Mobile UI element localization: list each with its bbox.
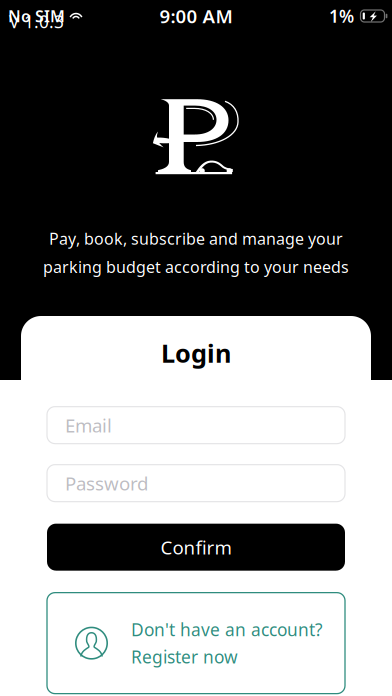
staticText: 1% xyxy=(329,4,354,27)
button[interactable]: Email xyxy=(47,407,345,444)
staticText: Email xyxy=(65,413,112,437)
staticText: Pay, book, subscribe and manage your xyxy=(49,228,343,249)
button[interactable]: Confirm xyxy=(47,524,345,571)
staticText: Password xyxy=(65,471,148,495)
staticText: 9:00 AM xyxy=(159,4,232,28)
staticText: No SIM xyxy=(8,5,65,27)
button[interactable]: Password xyxy=(47,465,345,502)
staticText: Login xyxy=(161,336,231,370)
button[interactable]: Don't have an account? xyxy=(47,593,345,694)
staticText: Confirm xyxy=(160,535,231,559)
staticText: Register now xyxy=(131,645,238,668)
staticText: parking budget according to your needs xyxy=(43,256,349,277)
staticText: V 1.0.3 xyxy=(9,10,64,33)
staticText: Don't have an account? xyxy=(131,618,323,641)
